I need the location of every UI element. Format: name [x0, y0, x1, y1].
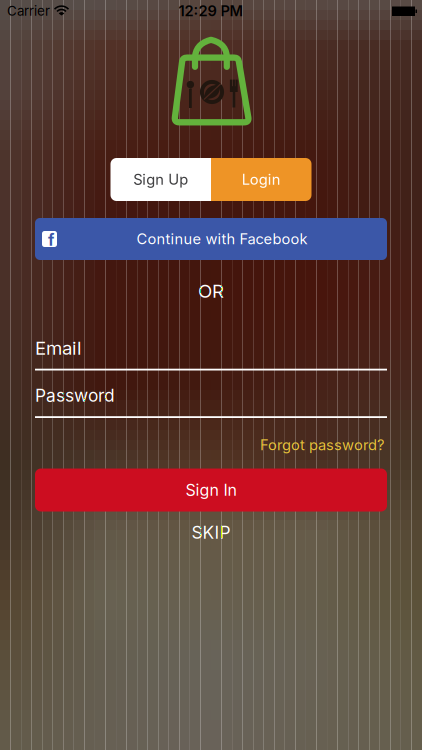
button[interactable]: Login [211, 158, 311, 201]
staticText: SKIP [191, 522, 230, 543]
staticText: Sign Up [133, 171, 188, 188]
button[interactable]: Email [35, 338, 387, 370]
staticText: Login [242, 171, 281, 188]
button[interactable]: Sign In [35, 468, 387, 511]
staticText: Continue with Facebook [136, 230, 307, 248]
button[interactable]: Password [35, 385, 387, 418]
staticText: OR [198, 280, 224, 302]
staticText: 12:29 PM [178, 2, 243, 20]
staticText: Email [35, 337, 82, 359]
staticText: Forgot password? [260, 436, 384, 454]
staticText: Sign In [185, 481, 236, 499]
staticText: Password [35, 385, 115, 406]
staticText: f [48, 231, 54, 249]
staticText: Carrier [7, 3, 50, 19]
button[interactable]: Forgot password? [38, 435, 384, 455]
button[interactable]: SKIP [161, 522, 261, 542]
button[interactable]: f [35, 218, 387, 260]
button[interactable]: Sign Up [110, 158, 211, 201]
